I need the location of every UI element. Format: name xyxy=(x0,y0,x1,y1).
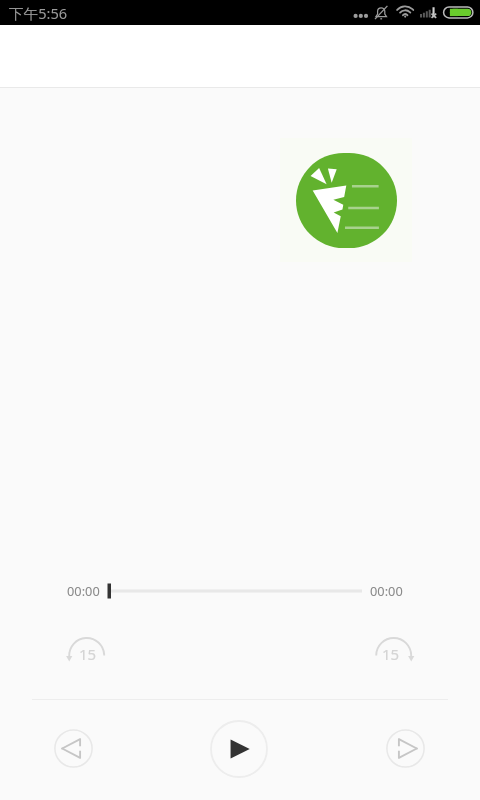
staticText: 15 xyxy=(382,644,400,664)
button[interactable]: Forward 15 seconds xyxy=(368,630,418,680)
staticText: 下午5:56 xyxy=(9,3,68,23)
button[interactable]: Rewind 15 seconds xyxy=(62,630,112,680)
button[interactable]: Album art xyxy=(280,138,412,262)
staticText: 15 xyxy=(79,644,97,664)
button[interactable]: Play xyxy=(210,720,268,778)
button[interactable]: Previous track xyxy=(54,729,93,768)
staticText: 00:00 xyxy=(67,582,100,599)
staticText: 00:00 xyxy=(370,582,403,599)
button[interactable]: Next track xyxy=(386,729,425,768)
button[interactable]: Seek bar xyxy=(105,580,367,602)
